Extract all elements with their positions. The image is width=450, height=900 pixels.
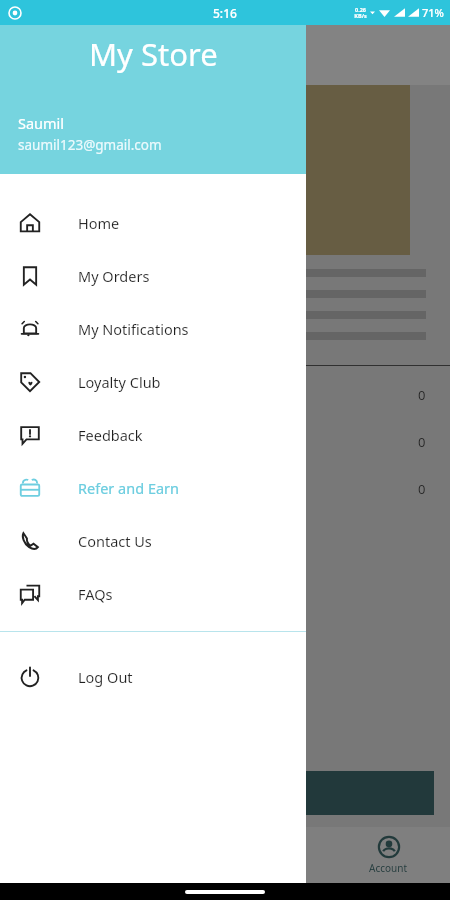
staticText: 71% [422,5,444,20]
button[interactable]: FAQs [0,567,306,620]
staticText: Account [369,861,408,875]
button[interactable] [16,771,434,815]
staticText: Contact Us [78,531,152,551]
staticText: 0 [418,386,426,404]
button[interactable]: Contact Us [0,514,306,567]
button[interactable]: Home [0,196,306,249]
button[interactable]: Refer and Earn [0,461,306,514]
button[interactable]: Loyalty Club [0,355,306,408]
button[interactable]: Log Out [0,650,306,703]
button[interactable]: My Notifications [0,302,306,355]
staticText: FAQs [78,584,113,604]
staticText: Home [78,213,120,233]
staticText: 5:16 [213,5,237,21]
staticText: 0.26 KB/s [354,6,367,19]
staticText: 0 [418,480,426,498]
button[interactable]: Account [359,832,418,879]
staticText: saumil123@gmail.com [18,136,162,154]
staticText: 0 [418,433,426,451]
staticText: Log Out [78,667,133,687]
staticText: Loyalty Club [78,372,161,392]
button[interactable]: My Orders [0,249,306,302]
button[interactable]: Feedback [0,408,306,461]
staticText: Saumil [18,113,65,133]
staticText: Feedback [78,425,143,445]
staticText: My Notifications [78,319,189,339]
staticText: My Store [89,33,218,75]
staticText: My Orders [78,266,150,286]
staticText: Refer and Earn [78,478,180,498]
